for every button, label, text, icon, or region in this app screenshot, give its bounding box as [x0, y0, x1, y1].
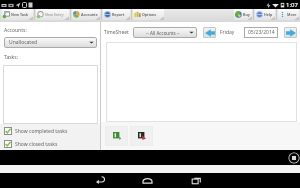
- staticText: 1:07: [286, 1, 298, 9]
- staticText: Tasks:: [4, 54, 18, 61]
- button[interactable]: Add entry: [105, 126, 128, 146]
- staticText: Friday: [220, 29, 235, 36]
- button[interactable]: New Entry: [36, 9, 69, 20]
- staticText: Accounts: [81, 12, 98, 17]
- staticText: Help: [264, 12, 273, 17]
- staticText: New Task: [11, 12, 28, 17]
- staticText: More: [287, 12, 297, 17]
- button[interactable]: Show completed tasks: [0, 127, 100, 135]
- button[interactable]: New Task: [2, 9, 33, 20]
- staticText: Show closed tasks: [15, 141, 58, 148]
- button[interactable]: -- All Accounts --: [133, 27, 197, 38]
- staticText: Show completed tasks: [15, 128, 68, 135]
- staticText: Buy: [243, 12, 250, 17]
- button[interactable]: Report: [103, 9, 130, 20]
- button[interactable]: Options: [133, 9, 164, 20]
- staticText: 05/23/2014: [248, 29, 275, 36]
- button[interactable]: Unallocated: [4, 37, 97, 48]
- button[interactable]: Accounts: [72, 9, 100, 20]
- button[interactable]: Delete entry: [130, 126, 153, 146]
- button[interactable]: Show closed tasks: [0, 140, 100, 148]
- button[interactable]: Next day: [284, 27, 297, 38]
- button[interactable]: More: [278, 9, 299, 20]
- button[interactable]: Recent apps: [188, 173, 204, 188]
- staticText: Unallocated: [9, 39, 38, 46]
- button[interactable]: Buy: [234, 9, 252, 20]
- staticText: Report: [112, 12, 125, 17]
- button[interactable]: Help: [255, 9, 275, 20]
- button[interactable]: Close: [288, 152, 300, 164]
- staticText: -- All Accounts --: [146, 30, 180, 36]
- button[interactable]: Back: [92, 173, 108, 188]
- staticText: New Entry: [45, 12, 64, 17]
- button[interactable]: Home: [139, 173, 155, 188]
- button[interactable]: Previous day: [203, 27, 216, 38]
- staticText: Options: [142, 12, 157, 17]
- button[interactable]: 05/23/2014: [244, 27, 278, 38]
- staticText: TimeSheet: [104, 29, 129, 36]
- staticText: Accounts:: [4, 27, 27, 34]
